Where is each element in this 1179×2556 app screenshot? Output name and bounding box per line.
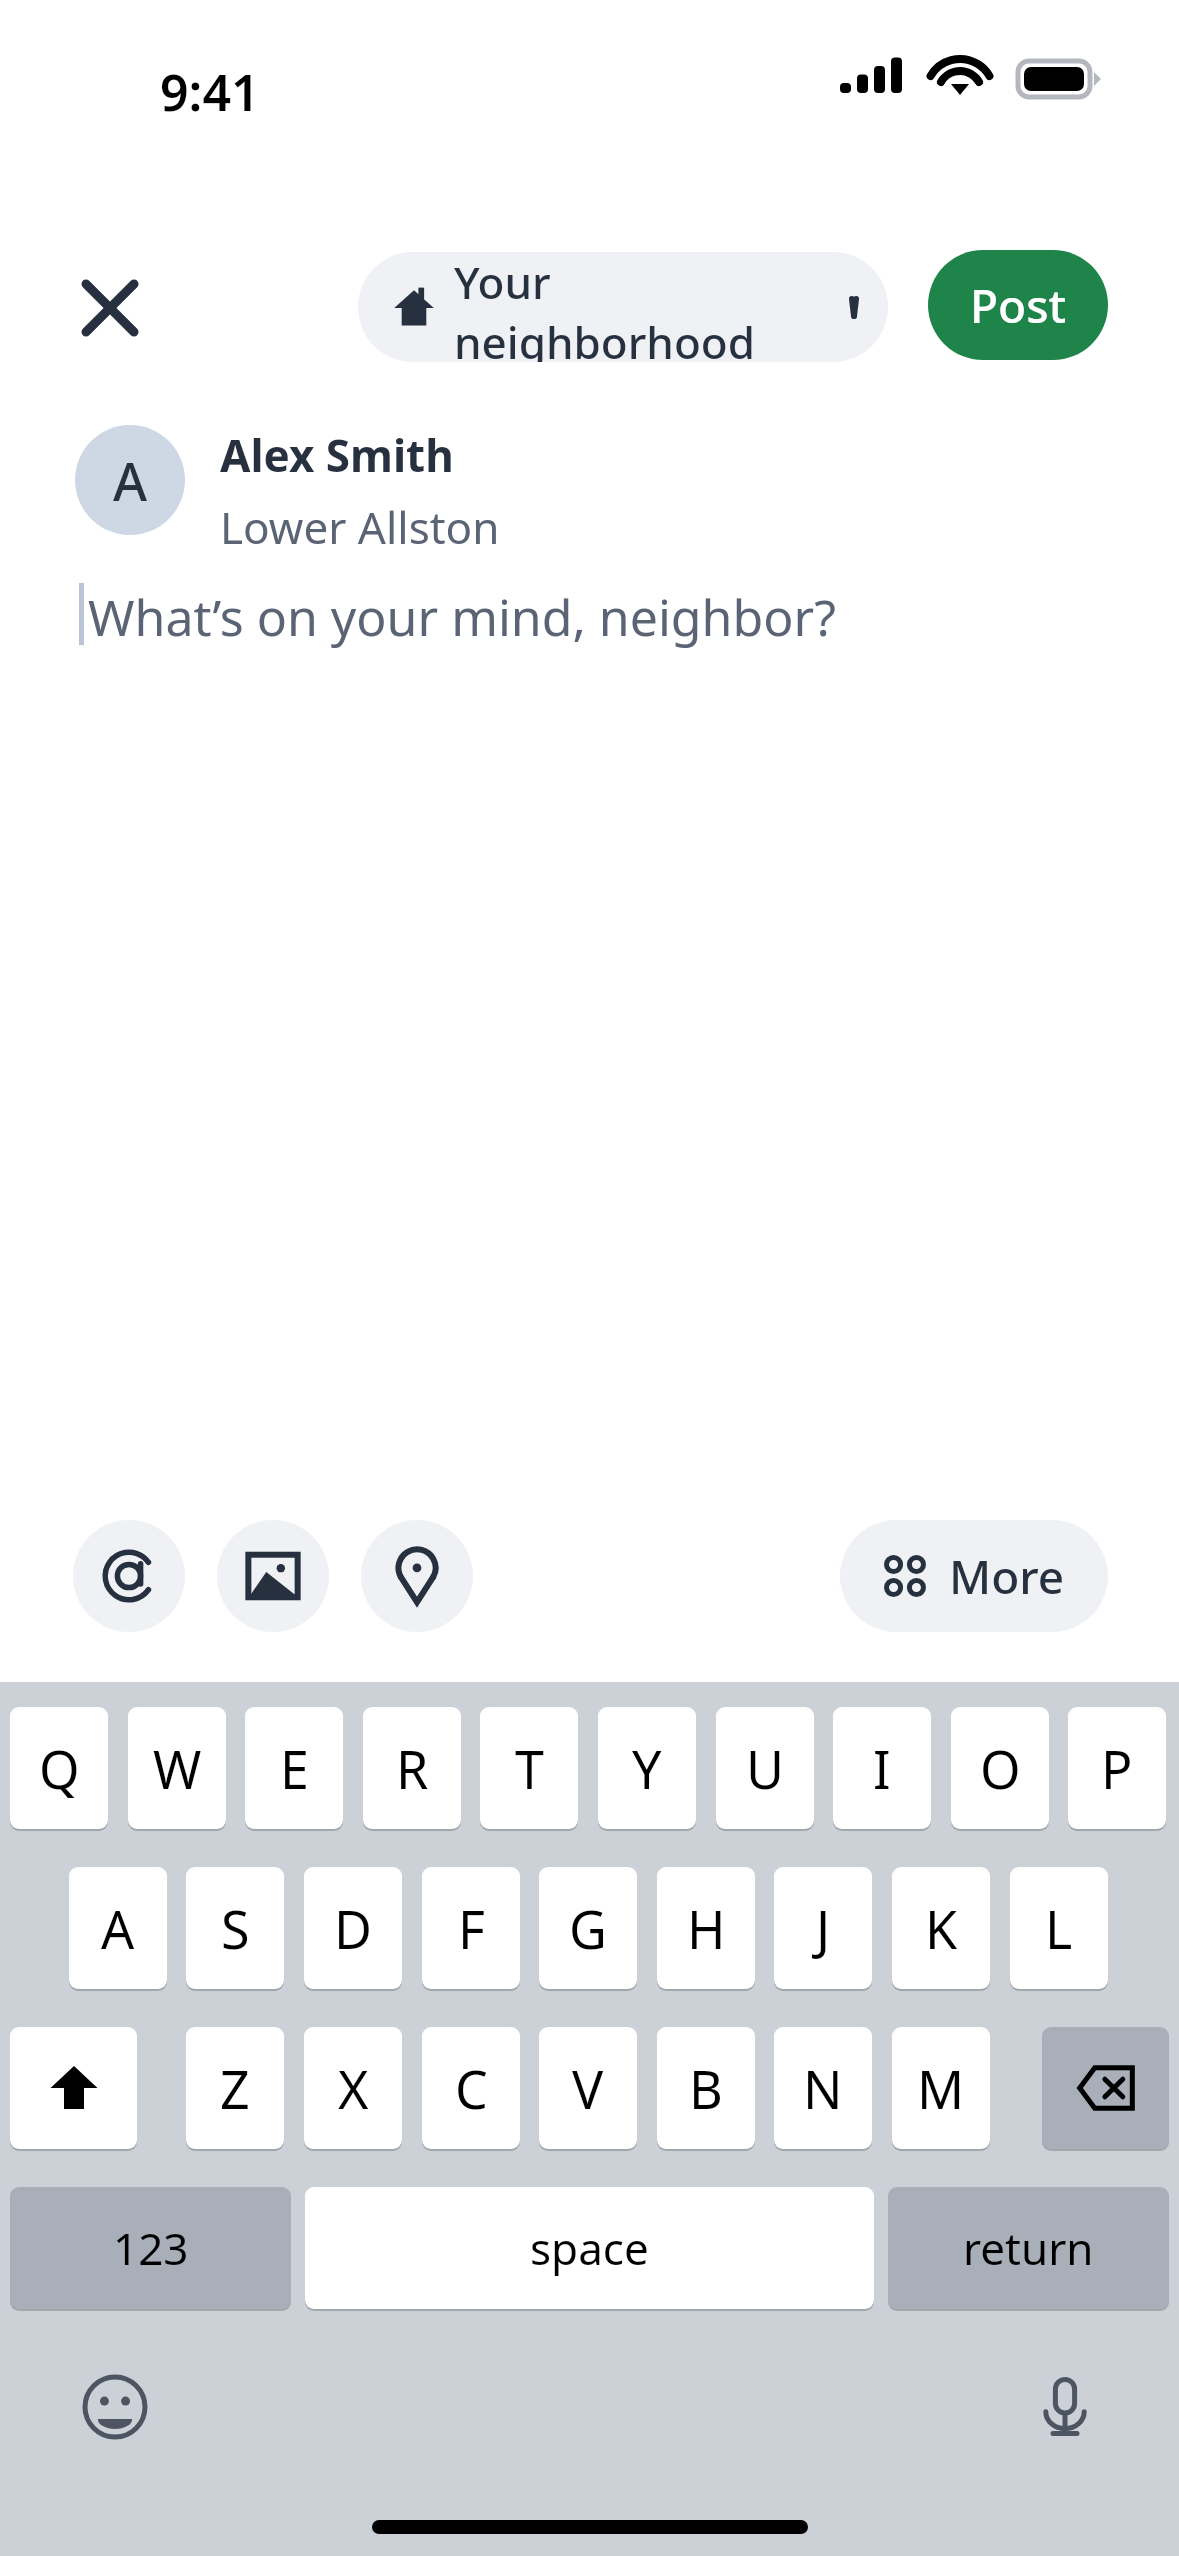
button[interactable]: A [75,425,185,535]
button[interactable]: D [304,1867,402,1989]
staticText: S [221,1893,250,1964]
button[interactable]: E [245,1707,343,1829]
button[interactable]: C [422,2027,520,2149]
staticText: I [873,1733,891,1804]
staticText: C [455,2053,488,2124]
button[interactable]: Add photo [217,1520,329,1632]
staticText: space [530,2218,649,2278]
button[interactable]: Mention a neighbor [73,1520,185,1632]
button[interactable]: W [128,1707,226,1829]
staticText: What’s on your mind, neighbor? [88,583,836,651]
button[interactable]: Emoji [70,2362,160,2452]
staticText: 9:41 [160,58,260,126]
button[interactable]: M [892,2027,990,2149]
staticText: V [572,2053,604,2124]
button[interactable]: More [840,1520,1108,1632]
staticText: B [689,2053,723,2124]
button[interactable]: O [951,1707,1049,1829]
staticText: Post [970,274,1067,337]
staticText: K [925,1893,958,1964]
staticText: Alex Smith [220,425,454,485]
button[interactable]: T [480,1707,578,1829]
staticText: G [569,1893,607,1964]
button[interactable]: Post [928,250,1108,360]
staticText: J [816,1893,831,1964]
button[interactable]: Y [598,1707,696,1829]
button[interactable]: S [186,1867,284,1989]
staticText: Q [39,1733,80,1804]
button[interactable]: 123 [10,2187,291,2309]
button[interactable]: Close [64,262,156,354]
button[interactable]: P [1068,1707,1166,1829]
staticText: F [458,1893,485,1964]
button[interactable]: L [1010,1867,1108,1989]
staticText: More [949,1545,1065,1608]
button[interactable]: Dictate [1020,2362,1110,2452]
button[interactable]: F [422,1867,520,1989]
staticText: 123 [113,2218,189,2278]
staticText: P [1101,1733,1133,1804]
button[interactable]: Q [10,1707,108,1829]
staticText: W [153,1733,202,1804]
button[interactable]: space [305,2187,874,2309]
staticText: A [101,1893,135,1964]
staticText: Y [632,1733,662,1804]
staticText: M [917,2053,965,2124]
staticText: E [280,1733,309,1804]
button[interactable]: Z [186,2027,284,2149]
staticText: D [334,1893,372,1964]
staticText: return [963,2218,1094,2278]
button[interactable]: H [657,1867,755,1989]
button[interactable]: Shift [10,2027,137,2149]
button[interactable]: I [833,1707,931,1829]
staticText: H [687,1893,726,1964]
button[interactable]: Backspace [1042,2027,1169,2149]
staticText: T [515,1733,544,1804]
staticText: A [113,445,148,516]
button[interactable]: A [69,1867,167,1989]
button[interactable]: U [716,1707,814,1829]
staticText: U [746,1733,785,1804]
button[interactable]: B [657,2027,755,2149]
staticText: X [338,2053,369,2124]
button[interactable]: N [774,2027,872,2149]
button[interactable]: X [304,2027,402,2149]
button[interactable]: G [539,1867,637,1989]
button[interactable]: R [363,1707,461,1829]
staticText: R [396,1733,429,1804]
button[interactable]: K [892,1867,990,1989]
staticText: Z [220,2053,250,2124]
staticText: L [1045,1893,1073,1964]
staticText: N [803,2053,843,2124]
staticText: O [980,1733,1021,1804]
button[interactable]: J [774,1867,872,1989]
staticText: Lower Allston [220,497,500,557]
button[interactable]: return [888,2187,1169,2309]
button[interactable]: Add location [361,1520,473,1632]
button[interactable]: Your neighborhood [358,252,888,362]
staticText: Your neighborhood [454,252,854,362]
button[interactable]: V [539,2027,637,2149]
